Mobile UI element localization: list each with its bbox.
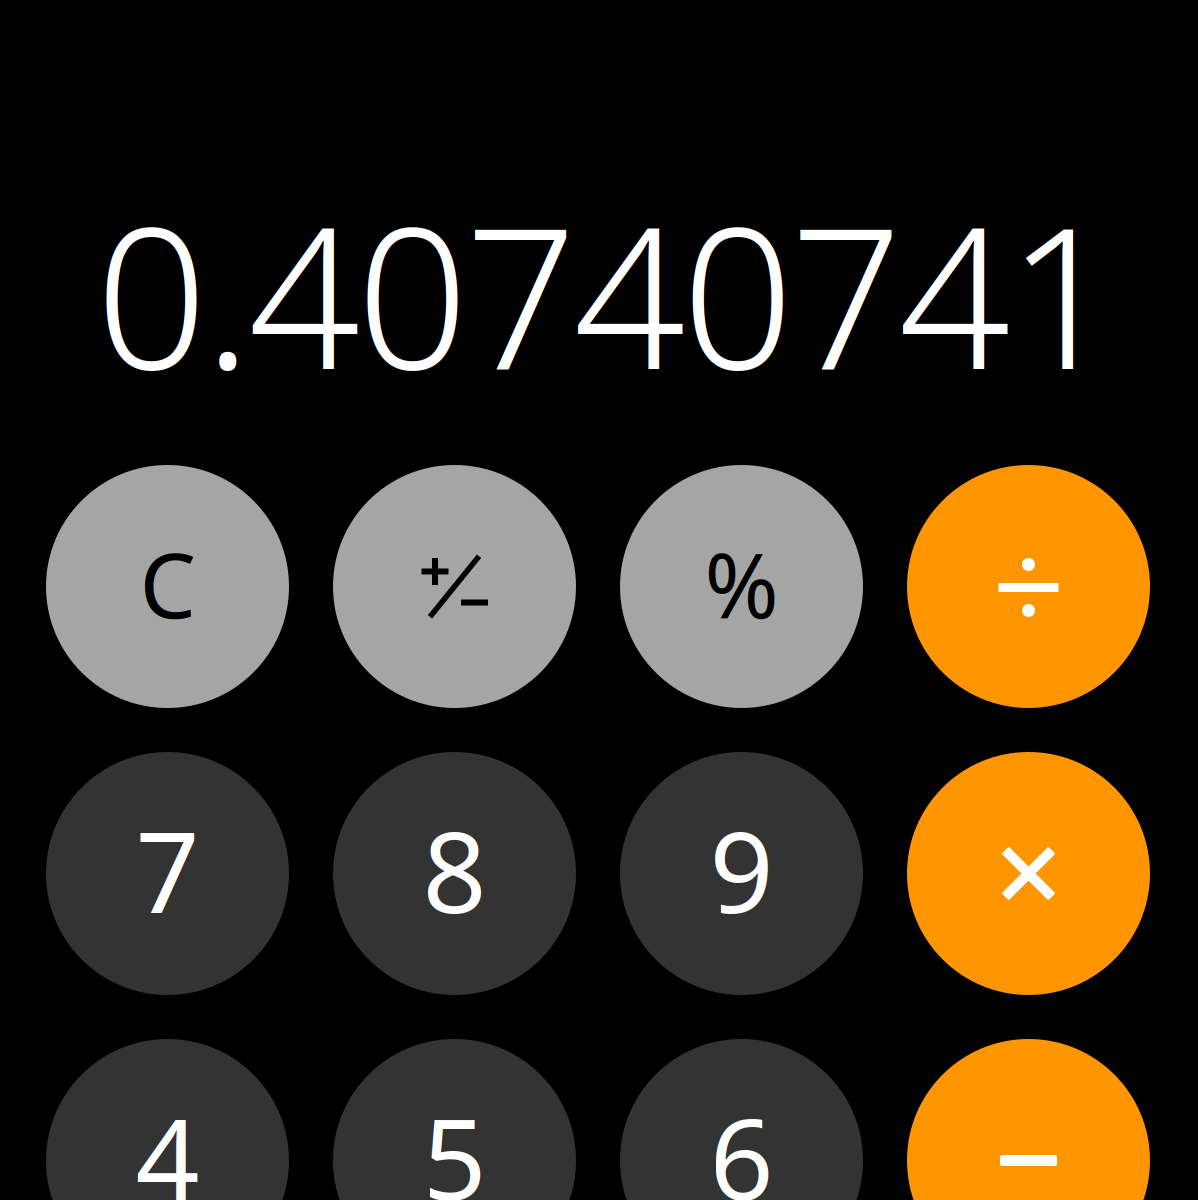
button[interactable]: 7 (46, 752, 289, 995)
button[interactable]: Toggle sign (333, 465, 576, 708)
button[interactable]: 8 (333, 752, 576, 995)
staticText: 9 (709, 795, 773, 944)
staticText: 4 (135, 1082, 199, 1200)
button[interactable]: Divide (907, 465, 1150, 708)
button[interactable]: 9 (620, 752, 863, 995)
button[interactable]: % (620, 465, 863, 708)
staticText: C (139, 524, 195, 643)
button[interactable]: 6 (620, 1039, 863, 1200)
staticText: 7 (135, 795, 199, 944)
button[interactable]: 5 (333, 1039, 576, 1200)
button[interactable]: 4 (46, 1039, 289, 1200)
button[interactable]: C (46, 465, 289, 708)
staticText: 0.40740741 (95, 163, 1119, 423)
button[interactable]: Subtract (907, 1039, 1150, 1200)
staticText: 5 (422, 1082, 486, 1200)
staticText: 6 (709, 1082, 773, 1200)
staticText: % (704, 524, 778, 643)
staticText: 8 (422, 795, 486, 944)
button[interactable]: Multiply (907, 752, 1150, 995)
